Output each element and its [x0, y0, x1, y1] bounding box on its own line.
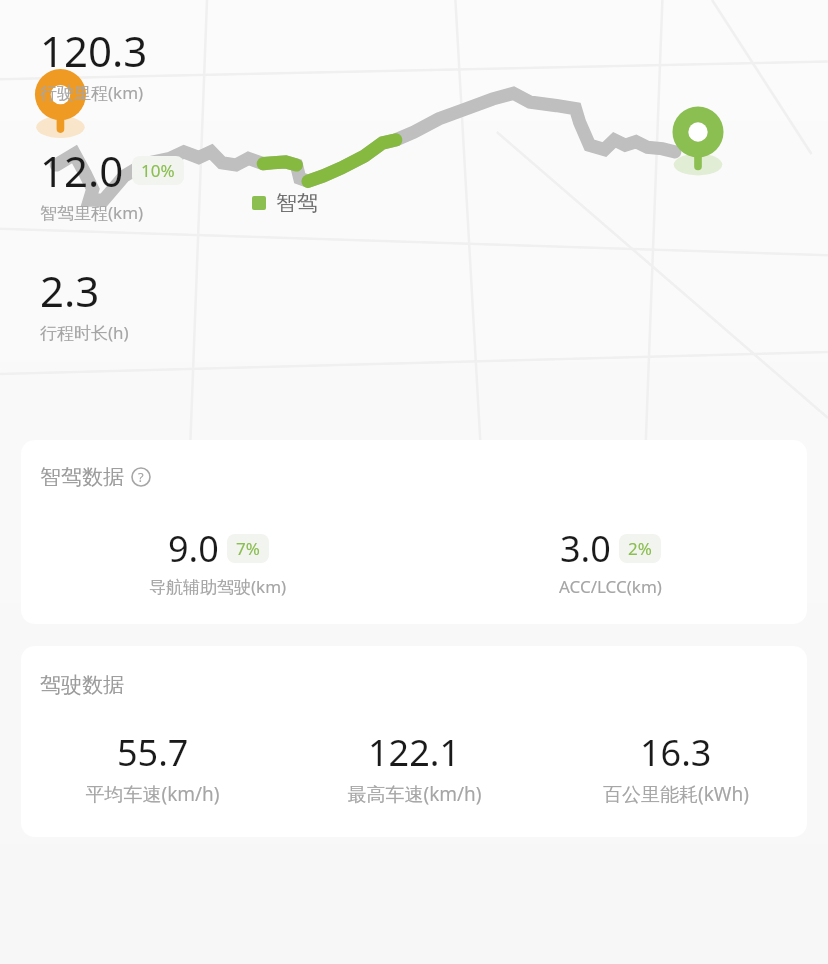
staticText: 百公里能耗(kWh) [603, 781, 749, 807]
button[interactable]: 驾驶数据 [21, 646, 807, 837]
staticText: 12.0 [40, 142, 124, 199]
staticText: 导航辅助驾驶(km) [149, 575, 287, 598]
staticText: 平均车速(km/h) [85, 781, 220, 807]
staticText: 行驶里程(km) [40, 81, 144, 104]
button[interactable]: 智驾数据 [21, 440, 807, 624]
staticText: 最高车速(km/h) [347, 781, 482, 807]
staticText: 10% [141, 159, 175, 182]
staticText: 55.7 [117, 728, 189, 777]
staticText: 120.3 [40, 22, 148, 79]
staticText: 7% [236, 537, 260, 560]
staticText: 16.3 [640, 728, 712, 777]
button[interactable]: 帮助 [131, 467, 151, 487]
staticText: 2.3 [40, 262, 100, 319]
staticText: 9.0 [168, 524, 219, 573]
staticText: 驾驶数据 [40, 672, 124, 698]
staticText: 122.1 [368, 728, 461, 777]
staticText: 智驾数据 [40, 464, 124, 490]
staticText: 行程时长(h) [40, 321, 129, 344]
staticText: 3.0 [560, 524, 611, 573]
staticText: 智驾里程(km) [40, 201, 144, 224]
staticText: ? [138, 468, 144, 486]
staticText: ACC/LCC(km) [559, 575, 662, 598]
staticText: 智驾 [276, 190, 318, 216]
staticText: 2% [628, 537, 652, 560]
